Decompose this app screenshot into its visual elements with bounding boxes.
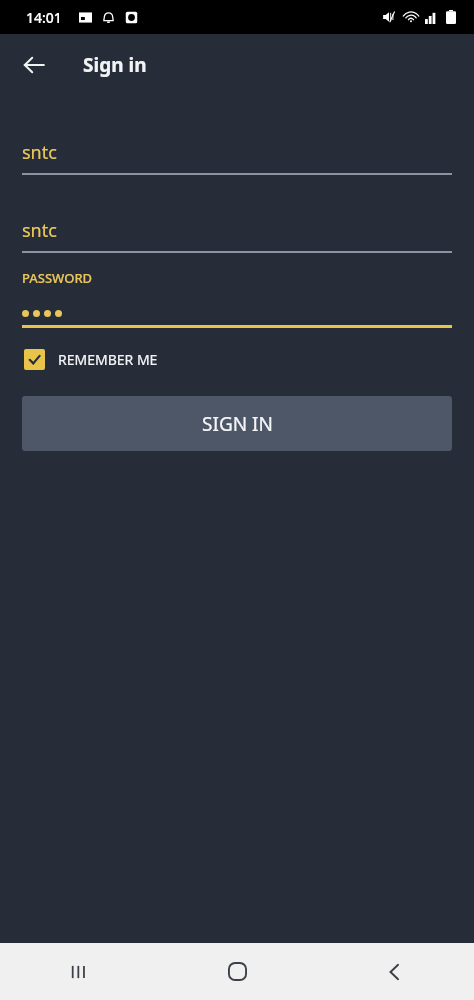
- staticText: 14:01: [26, 8, 62, 27]
- staticText: Sign in: [83, 52, 147, 78]
- button[interactable]: Home: [158, 943, 316, 1000]
- button[interactable]: Back: [316, 943, 474, 1000]
- button[interactable]: REMEMBER ME: [22, 345, 160, 374]
- staticText: sntc: [22, 140, 57, 165]
- button[interactable]: Recents: [0, 943, 158, 1000]
- button[interactable]: sntc: [22, 131, 452, 173]
- staticText: PASSWORD: [22, 269, 93, 287]
- button[interactable]: [22, 301, 452, 325]
- staticText: REMEMBER ME: [58, 350, 158, 369]
- button[interactable]: Back: [10, 41, 58, 89]
- staticText: sntc: [22, 218, 57, 243]
- button[interactable]: SIGN IN: [22, 396, 452, 451]
- staticText: SIGN IN: [202, 411, 273, 437]
- button[interactable]: sntc: [22, 209, 452, 251]
